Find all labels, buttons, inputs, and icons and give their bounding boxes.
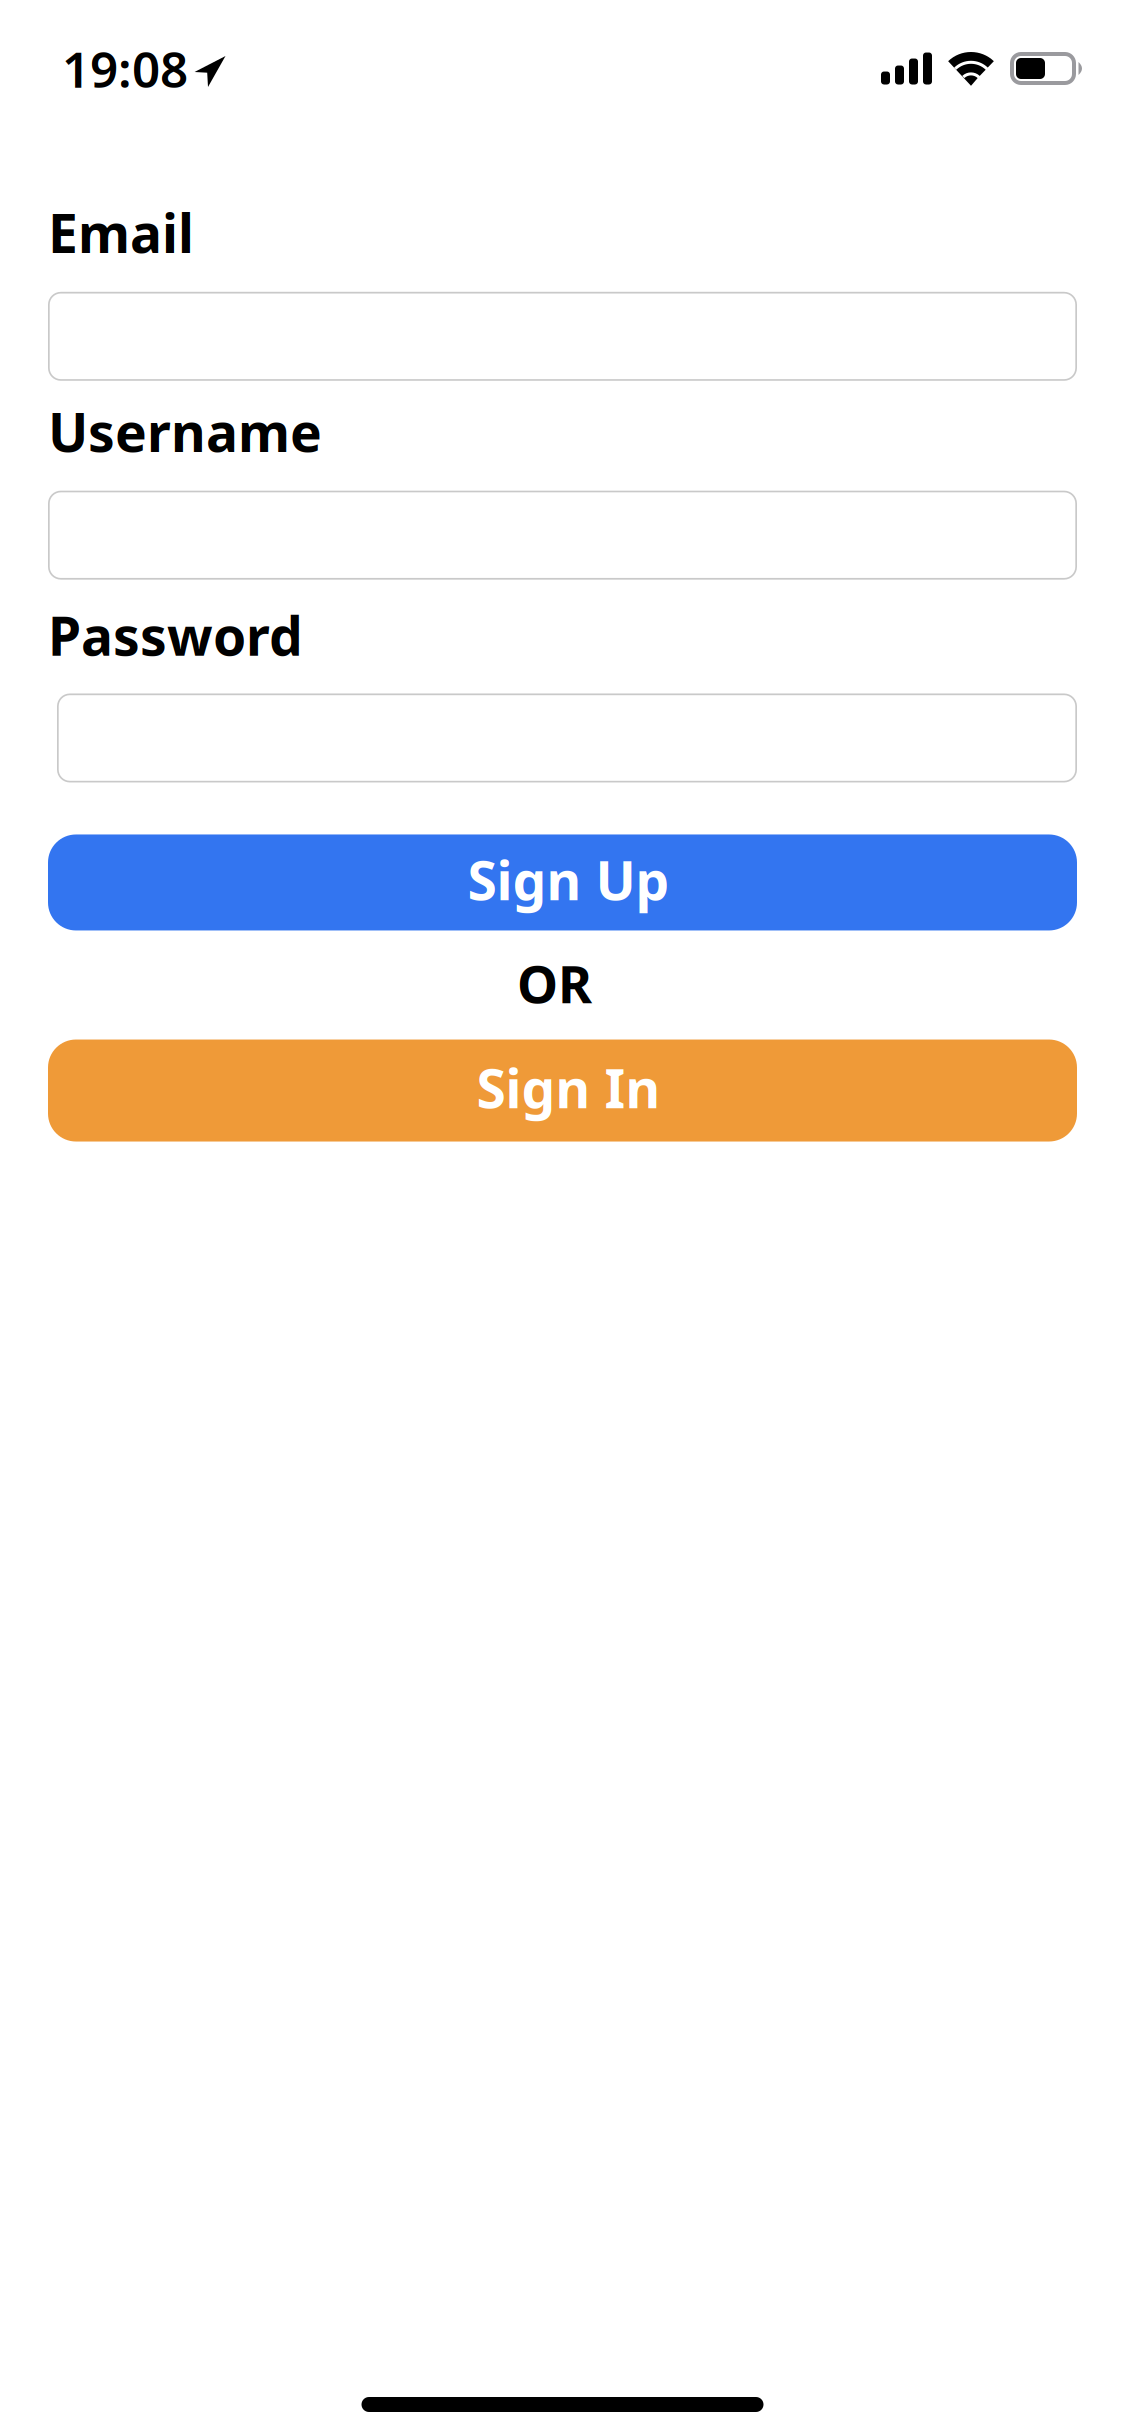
button[interactable]: Username <box>48 491 1077 580</box>
staticText: OR <box>517 948 592 1018</box>
button[interactable]: Sign Up <box>48 834 1077 930</box>
button[interactable]: Password <box>48 693 1077 782</box>
staticText: Email <box>48 197 194 268</box>
staticText: Username <box>48 396 322 467</box>
staticText: 19:08 <box>62 36 188 101</box>
button[interactable]: Email <box>48 292 1077 381</box>
button[interactable]: Sign In <box>48 1039 1077 1141</box>
staticText: Sign In <box>476 1052 660 1123</box>
staticText: Password <box>48 600 303 670</box>
staticText: Sign Up <box>467 844 669 915</box>
